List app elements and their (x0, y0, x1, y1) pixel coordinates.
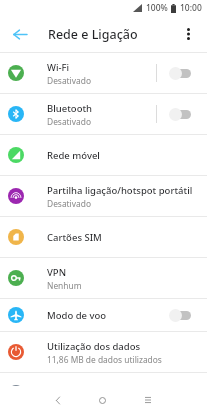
staticText: Bluetooth (47, 102, 93, 115)
staticText: Rede e Ligação (48, 26, 138, 43)
staticText: Wi-Fi (47, 61, 70, 74)
button[interactable]: Wi-Fi (0, 53, 207, 93)
button[interactable]: Bluetooth (0, 94, 207, 134)
button[interactable]: VPN (0, 258, 207, 298)
button[interactable]: Rede móvel (0, 135, 207, 175)
button[interactable]: Recents (125, 386, 170, 414)
button[interactable]: Back (35, 386, 80, 414)
staticText: Nenhum (47, 280, 82, 291)
staticText: Partilha ligação/hotspot portátil (47, 184, 193, 197)
button[interactable]: Utilização dos dados (0, 332, 207, 372)
button[interactable]: Home (80, 386, 125, 414)
button[interactable]: Toggle (169, 309, 192, 322)
button[interactable]: Back (3, 17, 37, 51)
staticText: Modo de voo (47, 309, 107, 322)
button[interactable]: More options (171, 17, 205, 51)
button[interactable]: Partilha ligação/hotspot portátil (0, 176, 207, 216)
staticText: 10:00 (180, 2, 202, 14)
button[interactable]: Cartões SIM (0, 217, 207, 257)
staticText: Utilização dos dados (47, 340, 141, 353)
staticText: 100% (146, 2, 168, 14)
staticText: Desativado (47, 116, 91, 127)
button[interactable]: Toggle (169, 108, 192, 121)
button[interactable]: Modo de voo (0, 299, 207, 331)
staticText: Desativado (47, 75, 91, 86)
staticText: VPN (47, 266, 67, 279)
staticText: Rede móvel (47, 149, 100, 162)
button[interactable]: Toggle (169, 67, 192, 80)
staticText: 11,86 MB de dados utilizados (47, 354, 162, 365)
staticText: Desativado (47, 198, 91, 209)
button[interactable]: USB (0, 373, 207, 386)
staticText: Cartões SIM (47, 231, 102, 244)
